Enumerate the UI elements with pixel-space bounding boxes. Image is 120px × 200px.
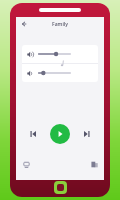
button[interactable] bbox=[22, 45, 98, 63]
button[interactable]: Play bbox=[50, 124, 70, 144]
button[interactable] bbox=[22, 64, 98, 82]
button[interactable]: Back bbox=[19, 19, 29, 29]
button[interactable]: Previous bbox=[26, 127, 40, 141]
button[interactable]: Home bbox=[57, 184, 64, 191]
button[interactable]: Speaker group bbox=[20, 158, 32, 170]
button[interactable]: Next bbox=[80, 127, 94, 141]
button[interactable]: Cast to device bbox=[88, 158, 100, 170]
staticText: Family bbox=[52, 21, 68, 28]
